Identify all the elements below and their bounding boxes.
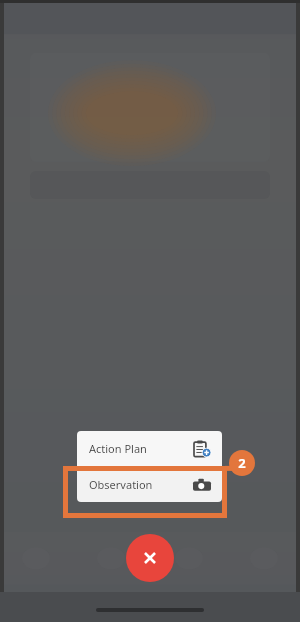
staticText: 2 xyxy=(238,454,246,472)
button[interactable]: Close xyxy=(126,534,174,582)
button[interactable]: Observation xyxy=(77,467,222,502)
staticText: Observation xyxy=(89,477,153,492)
button[interactable]: Highlighted Observation option xyxy=(63,466,227,518)
staticText: Action Plan xyxy=(89,441,147,456)
button[interactable]: Action Plan xyxy=(77,431,222,466)
button[interactable]: 2 xyxy=(229,450,255,476)
